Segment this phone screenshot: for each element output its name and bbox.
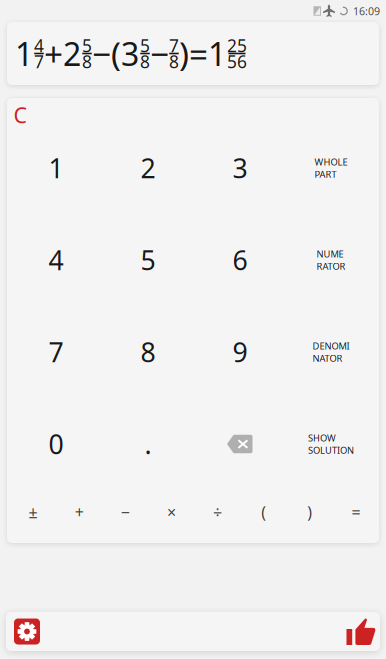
staticText: =	[351, 501, 360, 523]
staticText: 7	[169, 34, 179, 57]
staticText: 7	[48, 334, 63, 370]
staticText: 0	[48, 426, 63, 462]
staticText: WHOLE PART	[314, 156, 347, 180]
staticText: +	[44, 31, 63, 76]
button[interactable]: )	[287, 490, 333, 534]
staticText: 56	[227, 50, 247, 73]
button[interactable]: 9	[194, 306, 286, 398]
button[interactable]: 6	[194, 214, 286, 306]
button[interactable]: ×	[148, 490, 194, 534]
button[interactable]: −	[102, 490, 148, 534]
button[interactable]: +	[56, 490, 102, 534]
staticText: +	[75, 501, 84, 523]
staticText: 2	[63, 32, 81, 75]
staticText: 5	[140, 242, 155, 278]
staticText: 3	[232, 150, 247, 186]
button[interactable]: .	[102, 398, 194, 490]
staticText: −	[150, 31, 169, 76]
staticText: 5	[82, 34, 92, 57]
staticText: 5	[140, 34, 150, 57]
staticText: 1	[48, 150, 63, 186]
staticText: C	[13, 101, 26, 129]
staticText: )	[307, 501, 312, 523]
staticText: 6	[232, 242, 247, 278]
staticText: ×	[167, 501, 176, 523]
button[interactable]: DENOMI NATOR	[286, 306, 376, 398]
button[interactable]: NUME RATOR	[286, 214, 376, 306]
staticText: 25	[227, 34, 247, 57]
button[interactable]: 0	[10, 398, 102, 490]
staticText: 7	[34, 50, 44, 73]
button[interactable]: WHOLE PART	[286, 122, 376, 214]
staticText: 4	[34, 34, 44, 57]
staticText: 4	[48, 242, 63, 278]
button[interactable]: 1	[10, 122, 102, 214]
staticText: ±	[29, 501, 38, 523]
button[interactable]: 5	[102, 214, 194, 306]
staticText: 2	[140, 150, 155, 186]
button[interactable]: Settings	[14, 618, 40, 644]
staticText: 8	[82, 50, 92, 73]
button[interactable]: ÷	[194, 490, 241, 534]
button[interactable]: Clear	[7, 98, 33, 127]
staticText: SHOW SOLUTION	[308, 432, 354, 456]
staticText: 3	[121, 32, 139, 75]
staticText: .	[144, 426, 151, 462]
staticText: ÷	[213, 501, 222, 523]
staticText: 1	[208, 32, 226, 75]
button[interactable]: ±	[10, 490, 56, 534]
button[interactable]: Rate this app	[346, 617, 376, 645]
staticText: −	[121, 501, 130, 523]
staticText: 8	[169, 50, 179, 73]
button[interactable]: Backspace	[194, 398, 286, 490]
button[interactable]: (	[241, 490, 287, 534]
button[interactable]: 2	[102, 122, 194, 214]
button[interactable]: 7	[10, 306, 102, 398]
staticText: −(	[92, 31, 121, 76]
button[interactable]: SHOW SOLUTION	[286, 398, 376, 490]
button[interactable]: =	[333, 490, 379, 534]
button[interactable]: 4	[10, 214, 102, 306]
staticText: NUME RATOR	[316, 248, 345, 272]
staticText: 9	[232, 334, 247, 370]
staticText: )=	[179, 31, 208, 76]
staticText: 16:09	[353, 4, 380, 18]
staticText: 8	[140, 334, 155, 370]
staticText: DENOMI NATOR	[312, 340, 349, 364]
staticText: 8	[140, 50, 150, 73]
button[interactable]: 3	[194, 122, 286, 214]
staticText: 1	[15, 32, 33, 75]
button[interactable]: 8	[102, 306, 194, 398]
staticText: (	[261, 501, 266, 523]
